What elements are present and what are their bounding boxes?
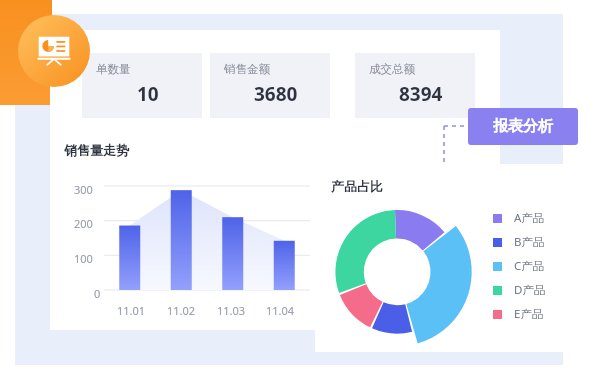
staticText: 8394 <box>399 81 443 107</box>
staticText: 11.01 <box>117 303 146 318</box>
staticText: C产品 <box>514 258 545 274</box>
staticText: 11.04 <box>266 303 295 318</box>
button[interactable]: D产品 <box>493 282 546 298</box>
button[interactable]: 销售金额 <box>210 53 330 118</box>
staticText: 3680 <box>254 81 298 107</box>
staticText: 成交总额 <box>369 62 415 76</box>
staticText: 销售金额 <box>224 62 270 76</box>
staticText: 10 <box>137 81 159 107</box>
staticText: E产品 <box>514 306 544 322</box>
button[interactable]: 报表分析 <box>18 15 90 87</box>
staticText: 100 <box>74 251 93 266</box>
staticText: 报表分析 <box>493 117 553 136</box>
button[interactable]: A产品 <box>493 210 545 226</box>
staticText: 销售量走势 <box>64 142 129 158</box>
staticText: 产品占比 <box>331 178 383 194</box>
staticText: 11.02 <box>167 303 196 318</box>
button[interactable]: C产品 <box>493 258 545 274</box>
button[interactable]: E产品 <box>493 306 544 322</box>
staticText: 11.03 <box>217 303 246 318</box>
staticText: 200 <box>74 216 93 231</box>
staticText: D产品 <box>514 282 546 298</box>
staticText: 0 <box>94 286 101 301</box>
button[interactable]: 单数量 <box>82 53 202 118</box>
staticText: A产品 <box>514 210 545 226</box>
button[interactable]: B产品 <box>493 234 545 250</box>
staticText: B产品 <box>514 234 545 250</box>
staticText: 300 <box>74 182 93 197</box>
button[interactable]: 报表分析 <box>468 108 578 145</box>
staticText: 单数量 <box>96 62 131 76</box>
button[interactable]: 成交总额 <box>355 53 475 118</box>
